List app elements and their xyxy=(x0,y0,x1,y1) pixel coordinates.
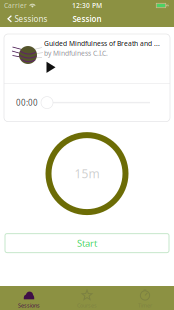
button[interactable]: Start xyxy=(5,234,169,253)
button[interactable]: Sessions xyxy=(0,286,58,310)
staticText: 15m xyxy=(74,166,99,181)
staticText: 00:00 xyxy=(16,97,38,108)
staticText: 12:30 PM xyxy=(72,1,102,10)
button[interactable]: Play xyxy=(44,62,56,74)
staticText: Start xyxy=(77,237,97,249)
staticText: Guided Mindfulness of Breath and ... xyxy=(44,39,160,48)
button[interactable]: Sessions xyxy=(0,11,52,27)
staticText: Sessions xyxy=(14,14,47,24)
staticText: Session xyxy=(72,14,101,24)
staticText: by Mindfulness C.I.C. xyxy=(44,49,108,58)
staticText: Sessions xyxy=(18,302,40,309)
staticText: Carrier xyxy=(4,1,27,10)
